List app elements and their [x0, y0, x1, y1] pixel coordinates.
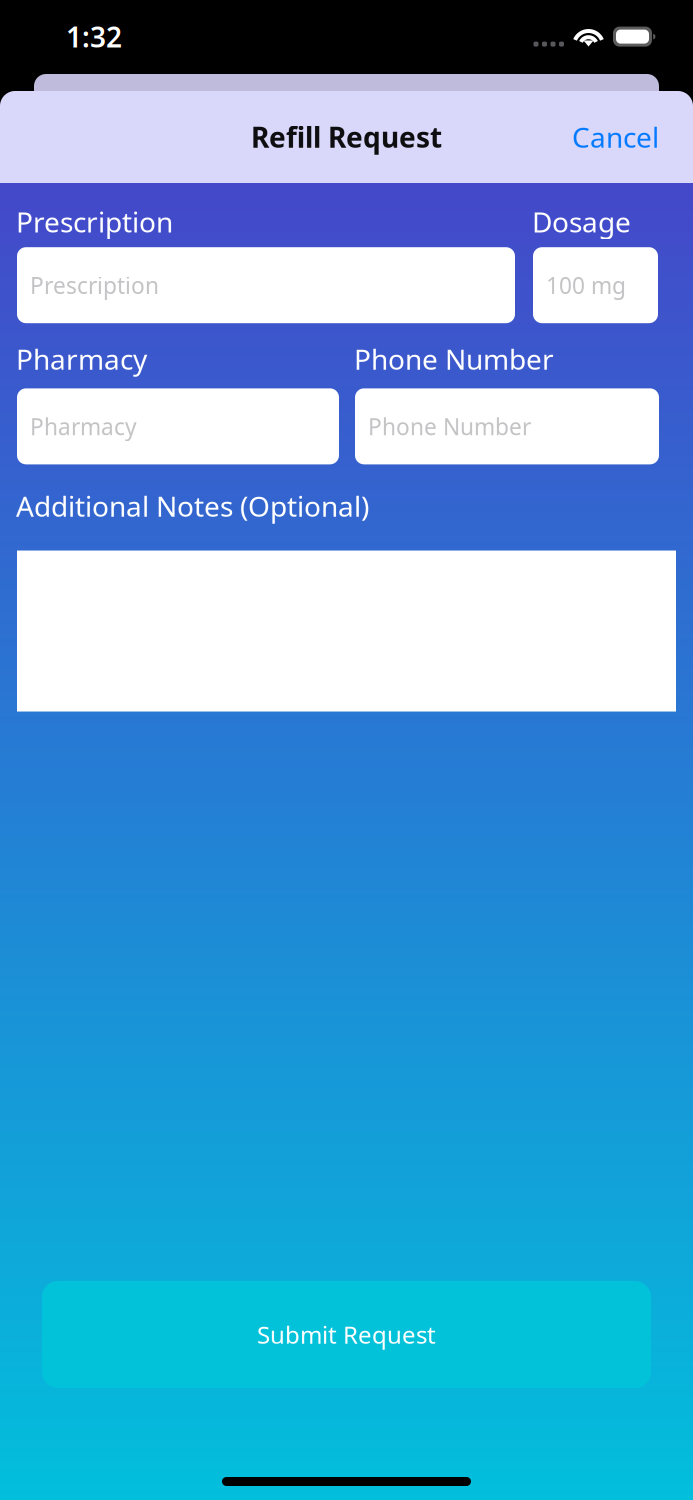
staticText: Pharmacy	[16, 340, 147, 377]
button[interactable]: Pharmacy	[17, 388, 339, 464]
button[interactable]: 100 mg	[533, 247, 658, 323]
button[interactable]: Phone Number	[355, 388, 659, 464]
staticText: Pharmacy	[30, 411, 137, 441]
staticText: Prescription	[30, 270, 159, 300]
staticText: Phone Number	[368, 411, 531, 441]
staticText: Refill Request	[251, 118, 442, 156]
staticText: 100 mg	[546, 270, 626, 300]
button[interactable]: Prescription	[17, 247, 515, 323]
staticText: Prescription	[16, 203, 173, 240]
staticText: Dosage	[532, 203, 631, 240]
button[interactable]: Cancel	[564, 106, 667, 168]
staticText: Submit Request	[257, 1319, 436, 1350]
button[interactable]: Submit Request	[42, 1281, 651, 1388]
staticText: 1:32	[66, 18, 122, 55]
staticText: Additional Notes (Optional)	[16, 487, 369, 525]
staticText: Cancel	[572, 118, 659, 156]
staticText: Phone Number	[354, 340, 554, 377]
